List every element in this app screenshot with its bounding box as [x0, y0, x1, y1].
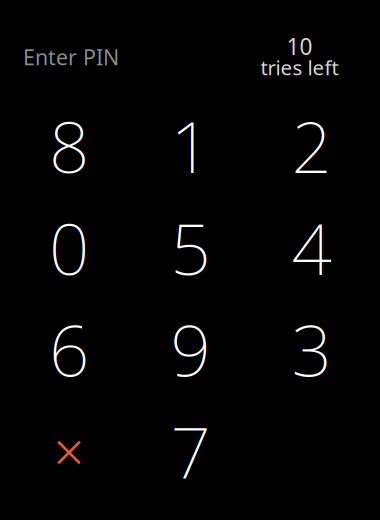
- button[interactable]: 8: [10, 95, 128, 195]
- button[interactable]: 9: [131, 299, 249, 399]
- staticText: 10: [286, 31, 312, 62]
- staticText: 9: [170, 301, 210, 397]
- button[interactable]: 1: [131, 95, 249, 195]
- staticText: tries left: [260, 53, 338, 81]
- button[interactable]: 0: [10, 197, 128, 297]
- button[interactable]: 6: [10, 299, 128, 399]
- staticText: 4: [291, 199, 331, 296]
- button[interactable]: 2: [252, 95, 370, 195]
- staticText: 3: [291, 301, 331, 397]
- button[interactable]: 5: [131, 197, 249, 297]
- staticText: 6: [49, 301, 89, 397]
- staticText: 5: [170, 199, 210, 296]
- staticText: 0: [49, 199, 89, 296]
- staticText: 7: [170, 403, 210, 499]
- button[interactable]: Delete: [10, 402, 128, 502]
- button[interactable]: 3: [252, 299, 370, 399]
- staticText: 2: [291, 97, 331, 194]
- staticText: 8: [49, 97, 89, 194]
- button[interactable]: 4: [252, 197, 370, 297]
- button[interactable]: 7: [131, 401, 249, 501]
- staticText: 1: [170, 97, 210, 194]
- staticText: Enter PIN: [23, 42, 119, 72]
